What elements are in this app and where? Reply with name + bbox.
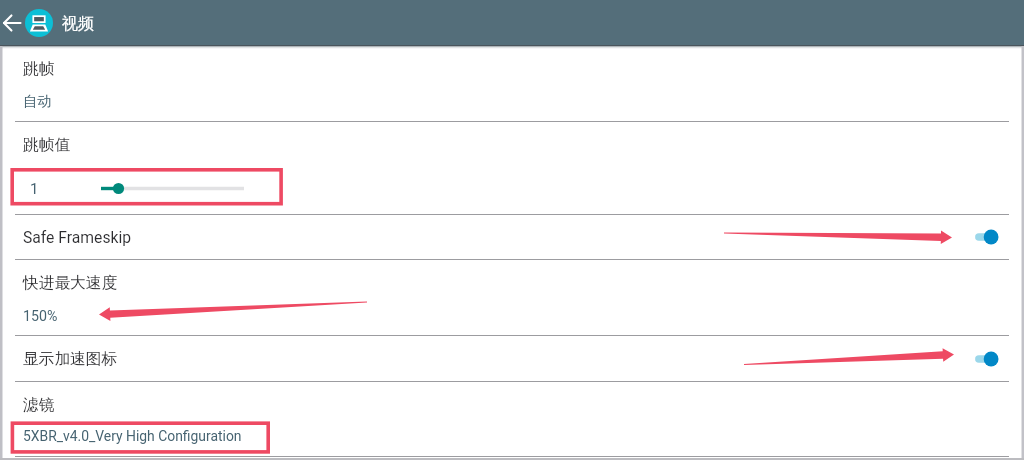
staticText: 视频 <box>62 13 95 33</box>
button[interactable]: 快进最大速度 <box>0 260 1024 335</box>
button[interactable]: 显示加速图标 <box>0 336 1024 381</box>
staticText: 150% <box>23 308 58 325</box>
button[interactable]: 滤镜 <box>0 382 1024 456</box>
button[interactable]: Toggle <box>965 346 999 372</box>
button[interactable]: Safe Frameskip <box>0 215 1024 259</box>
staticText: 1 <box>30 180 39 198</box>
staticText: 快进最大速度 <box>23 273 118 293</box>
button[interactable]: Toggle <box>965 224 999 250</box>
staticText: Safe Frameskip <box>23 228 132 246</box>
staticText: 滤镜 <box>23 395 55 415</box>
button[interactable]: 跳帧值 <box>0 122 1024 214</box>
staticText: 跳帧 <box>23 59 55 79</box>
staticText: 5XBR_v4.0_Very High Configuration <box>23 428 242 444</box>
staticText: 跳帧值 <box>23 135 71 155</box>
button[interactable]: 跳帧 <box>0 46 1024 121</box>
staticText: 显示加速图标 <box>23 349 118 369</box>
staticText: 自动 <box>23 92 52 110</box>
button[interactable]: Frameskip value slider <box>101 175 244 200</box>
button[interactable]: Back <box>0 0 24 46</box>
